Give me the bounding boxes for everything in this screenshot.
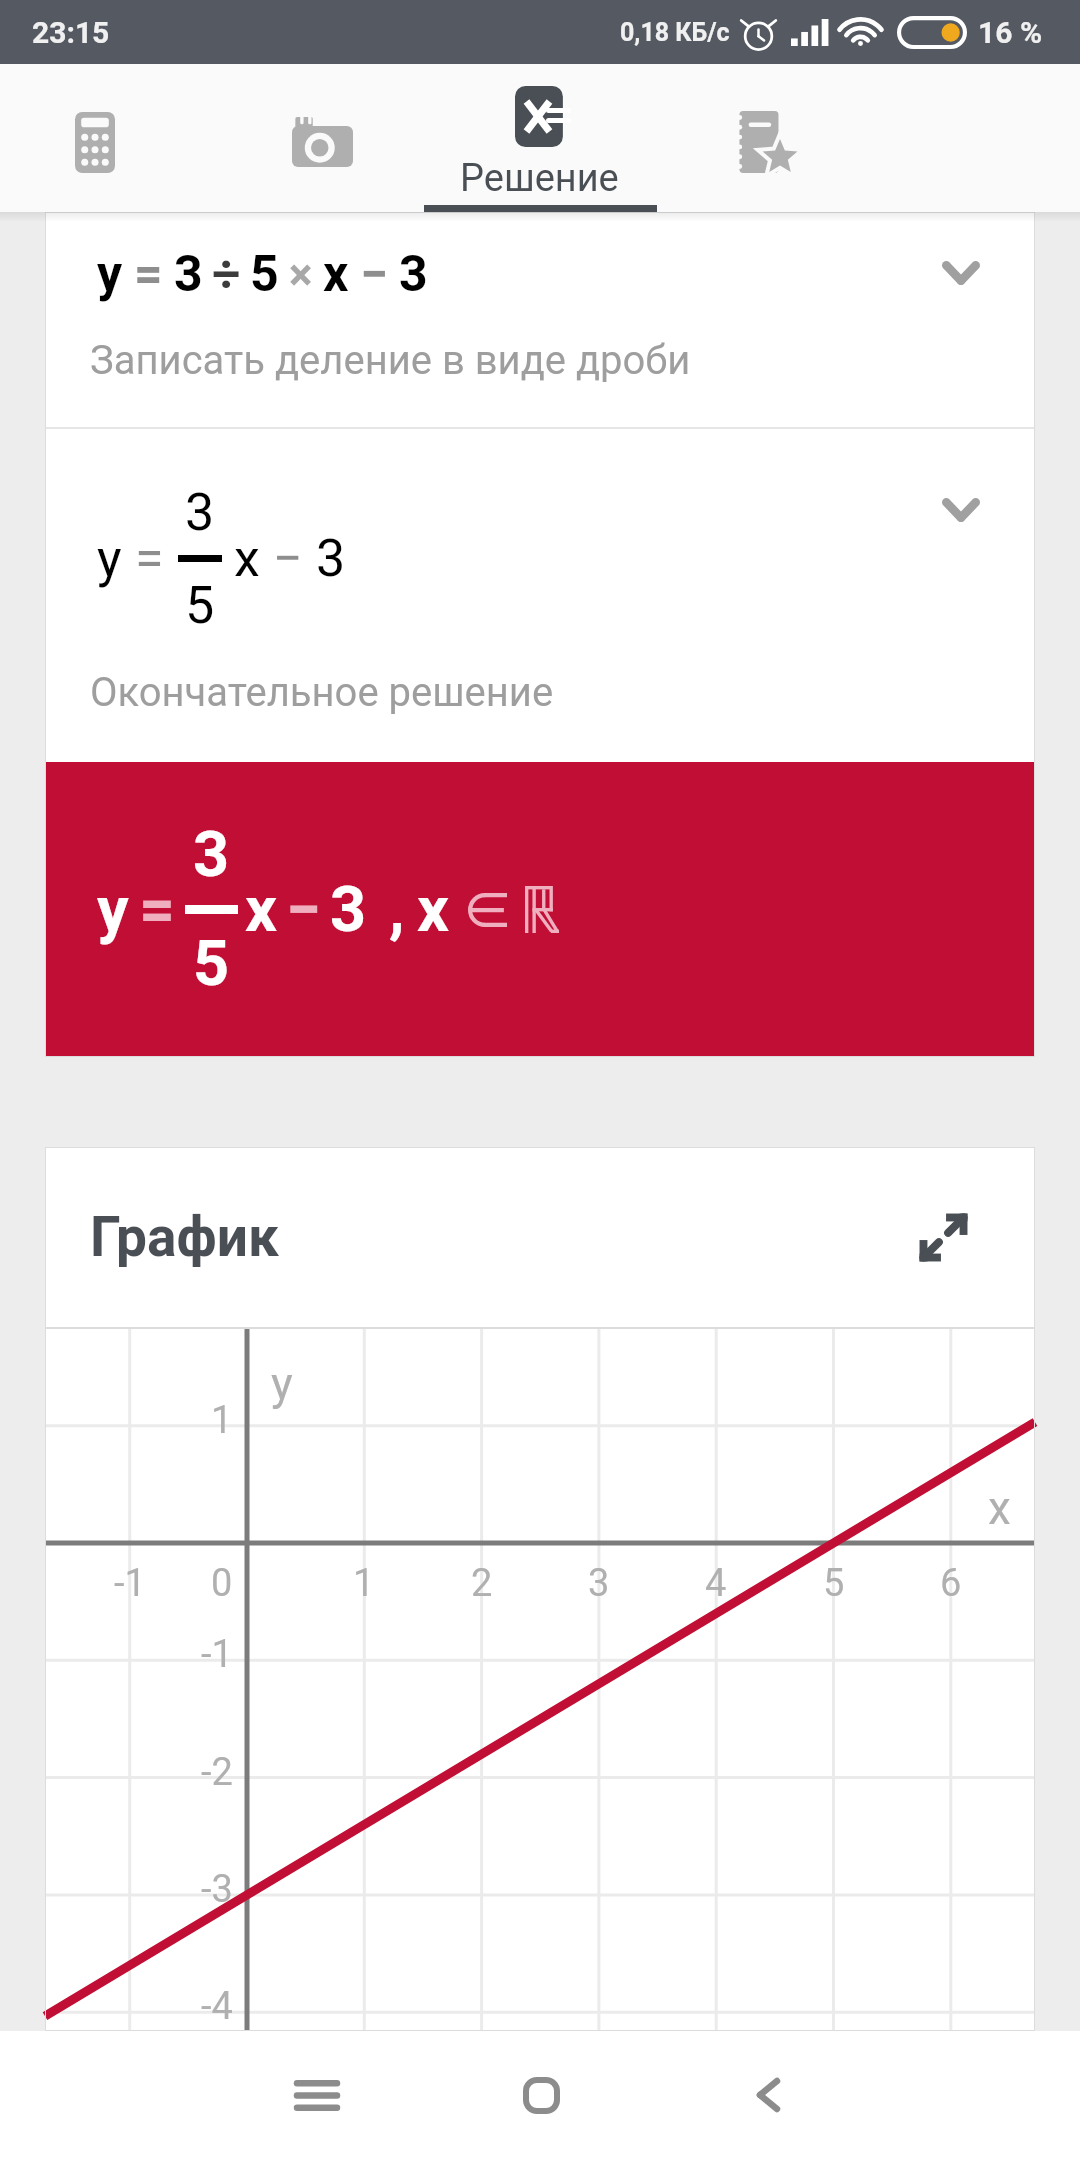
staticText: -4	[201, 1984, 233, 2029]
staticText: Записать деление в виде дроби	[90, 337, 691, 384]
staticText: 3	[316, 528, 346, 589]
staticText: =	[135, 528, 164, 589]
staticText: y	[271, 1357, 293, 1411]
staticText: 23:15	[32, 15, 110, 50]
staticText: 3	[185, 482, 215, 543]
button[interactable]: График	[45, 1147, 1035, 1327]
staticText: 5	[250, 245, 279, 304]
button[interactable]: Expand graph	[918, 1212, 969, 1263]
staticText: −	[286, 873, 322, 947]
button[interactable]: Calculator	[0, 64, 190, 212]
button[interactable]: Expand step	[942, 498, 1000, 556]
button[interactable]: y	[45, 429, 1035, 762]
staticText: 0,18 КБ/с	[620, 18, 730, 47]
staticText: ,	[389, 873, 405, 947]
staticText: 5	[185, 575, 215, 636]
staticText: =	[134, 245, 163, 304]
button[interactable]: Recents	[262, 2040, 372, 2150]
staticText: 3	[588, 1561, 610, 1606]
staticText: 5	[193, 927, 230, 1001]
staticText: y	[97, 528, 122, 589]
staticText: 2	[471, 1561, 493, 1606]
staticText: ×	[289, 249, 313, 301]
staticText: x	[323, 245, 349, 304]
button[interactable]: Favourites	[657, 64, 877, 212]
staticText: x	[417, 873, 450, 947]
staticText: 1	[353, 1561, 375, 1606]
staticText: -1	[201, 1632, 233, 1677]
staticText: -2	[201, 1750, 233, 1795]
staticText: -3	[201, 1867, 233, 1912]
staticText: x	[234, 528, 260, 589]
button[interactable]: Решение	[424, 64, 657, 212]
staticText: График	[90, 1205, 279, 1269]
staticText: y	[97, 245, 123, 304]
staticText: 5	[823, 1561, 845, 1606]
button[interactable]: Back	[713, 2040, 823, 2150]
staticText: y	[97, 873, 129, 947]
staticText: =	[139, 873, 176, 947]
staticText: 0	[211, 1561, 233, 1606]
button[interactable]: y	[45, 212, 1035, 427]
staticText: x	[245, 873, 278, 947]
staticText: −	[273, 528, 303, 589]
staticText: 3	[399, 245, 428, 304]
staticText: Решение	[460, 156, 619, 201]
staticText: 1	[211, 1398, 233, 1443]
staticText: 3	[174, 245, 203, 304]
button[interactable]: Home	[486, 2040, 596, 2150]
staticText: Окончательное решение	[90, 669, 554, 716]
staticText: ÷	[212, 245, 241, 304]
staticText: 3	[330, 873, 367, 947]
staticText: 16 %	[978, 15, 1043, 50]
button[interactable]: Camera	[190, 64, 454, 212]
staticText: −	[360, 245, 388, 304]
staticText: -1	[114, 1561, 146, 1606]
staticText: 6	[940, 1561, 962, 1606]
staticText: 4	[705, 1561, 727, 1606]
button[interactable]: Expand step	[942, 261, 1000, 319]
staticText: 3	[193, 818, 230, 892]
staticText: x	[988, 1481, 1011, 1535]
